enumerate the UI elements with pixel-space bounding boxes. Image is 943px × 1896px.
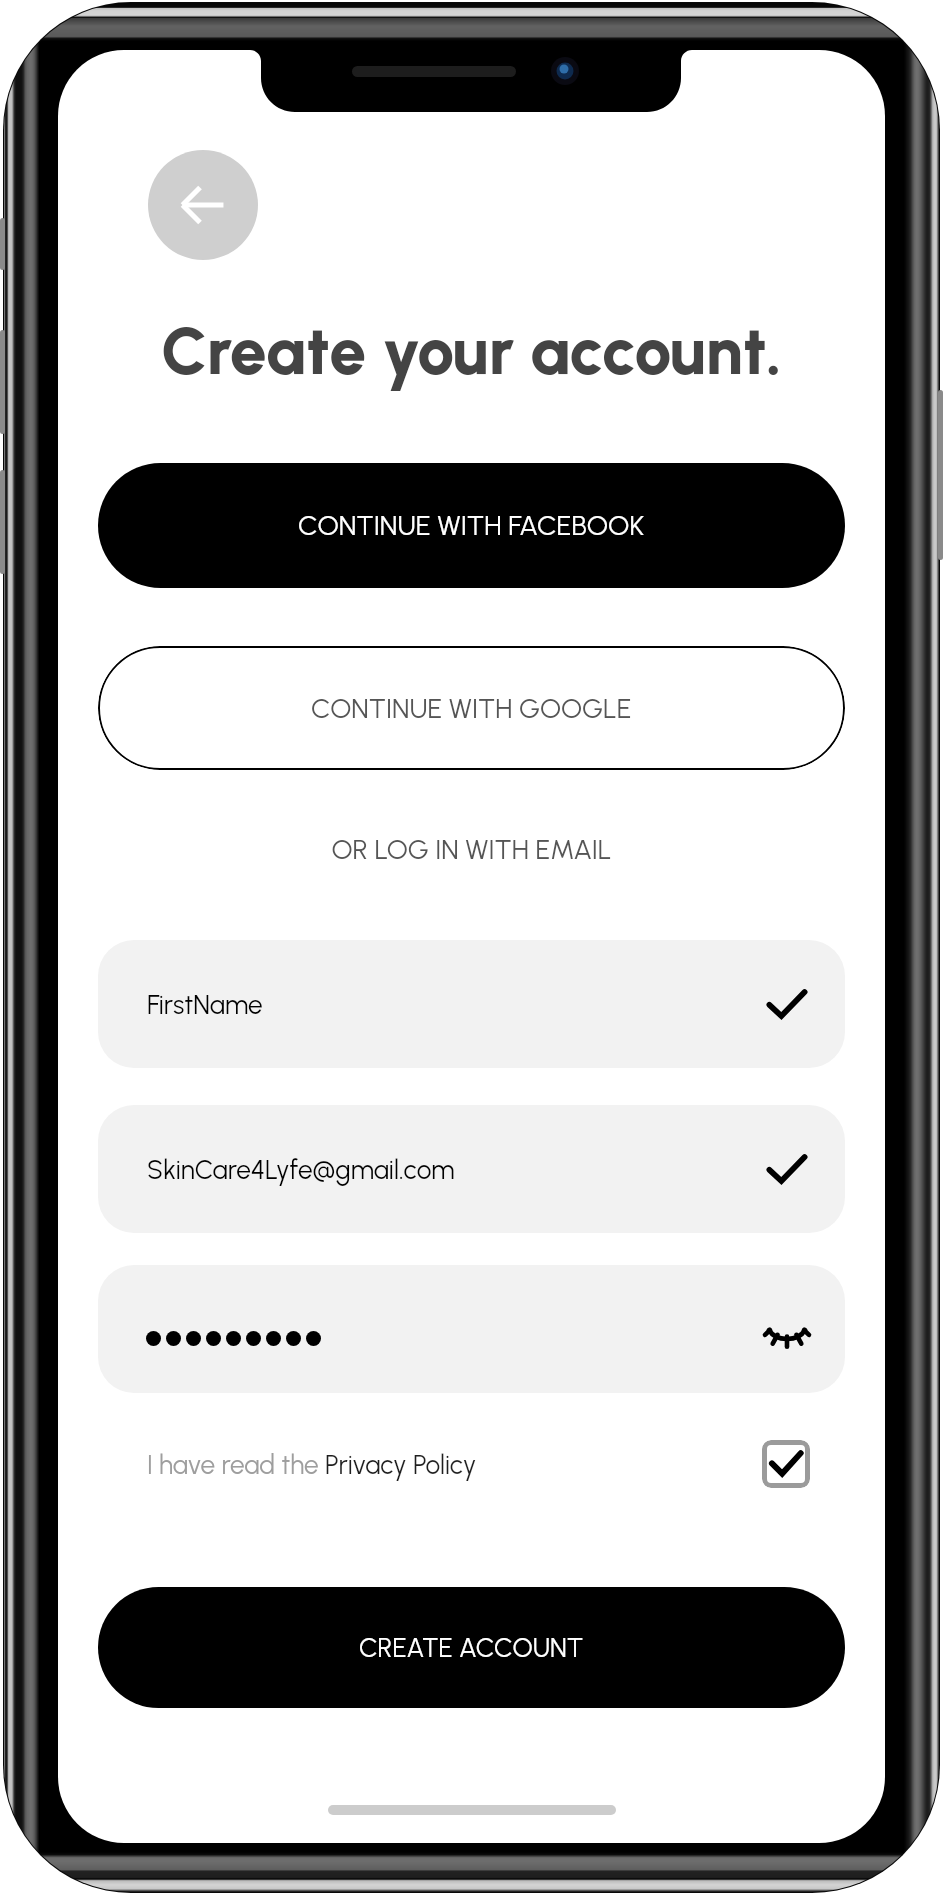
- staticText: CONTINUE WITH FACEBOOK: [298, 509, 645, 542]
- button[interactable]: CONTINUE WITH FACEBOOK: [98, 463, 845, 588]
- staticText: OR LOG IN WITH EMAIL: [58, 833, 885, 866]
- button[interactable]: Back: [148, 150, 258, 260]
- button[interactable]: Accept privacy policy: [762, 1440, 810, 1488]
- button[interactable]: FirstName: [98, 940, 845, 1068]
- button[interactable]: Field valid: [765, 1147, 809, 1191]
- button[interactable]: Show password: [98, 1265, 845, 1393]
- staticText: CONTINUE WITH GOOGLE: [311, 692, 632, 725]
- staticText: SkinCare4Lyfe@gmail.com: [147, 1154, 455, 1185]
- button[interactable]: SkinCare4Lyfe@gmail.com: [98, 1105, 845, 1233]
- staticText: Create your account.: [58, 311, 885, 390]
- staticText: FirstName: [147, 989, 263, 1020]
- staticText: CREATE ACCOUNT: [359, 1632, 584, 1664]
- button[interactable]: I have read the Privacy Policy: [147, 1449, 477, 1480]
- button[interactable]: Field valid: [765, 982, 809, 1026]
- button[interactable]: CREATE ACCOUNT: [98, 1587, 845, 1708]
- button[interactable]: Show password: [765, 1307, 809, 1351]
- button[interactable]: CONTINUE WITH GOOGLE: [98, 646, 845, 770]
